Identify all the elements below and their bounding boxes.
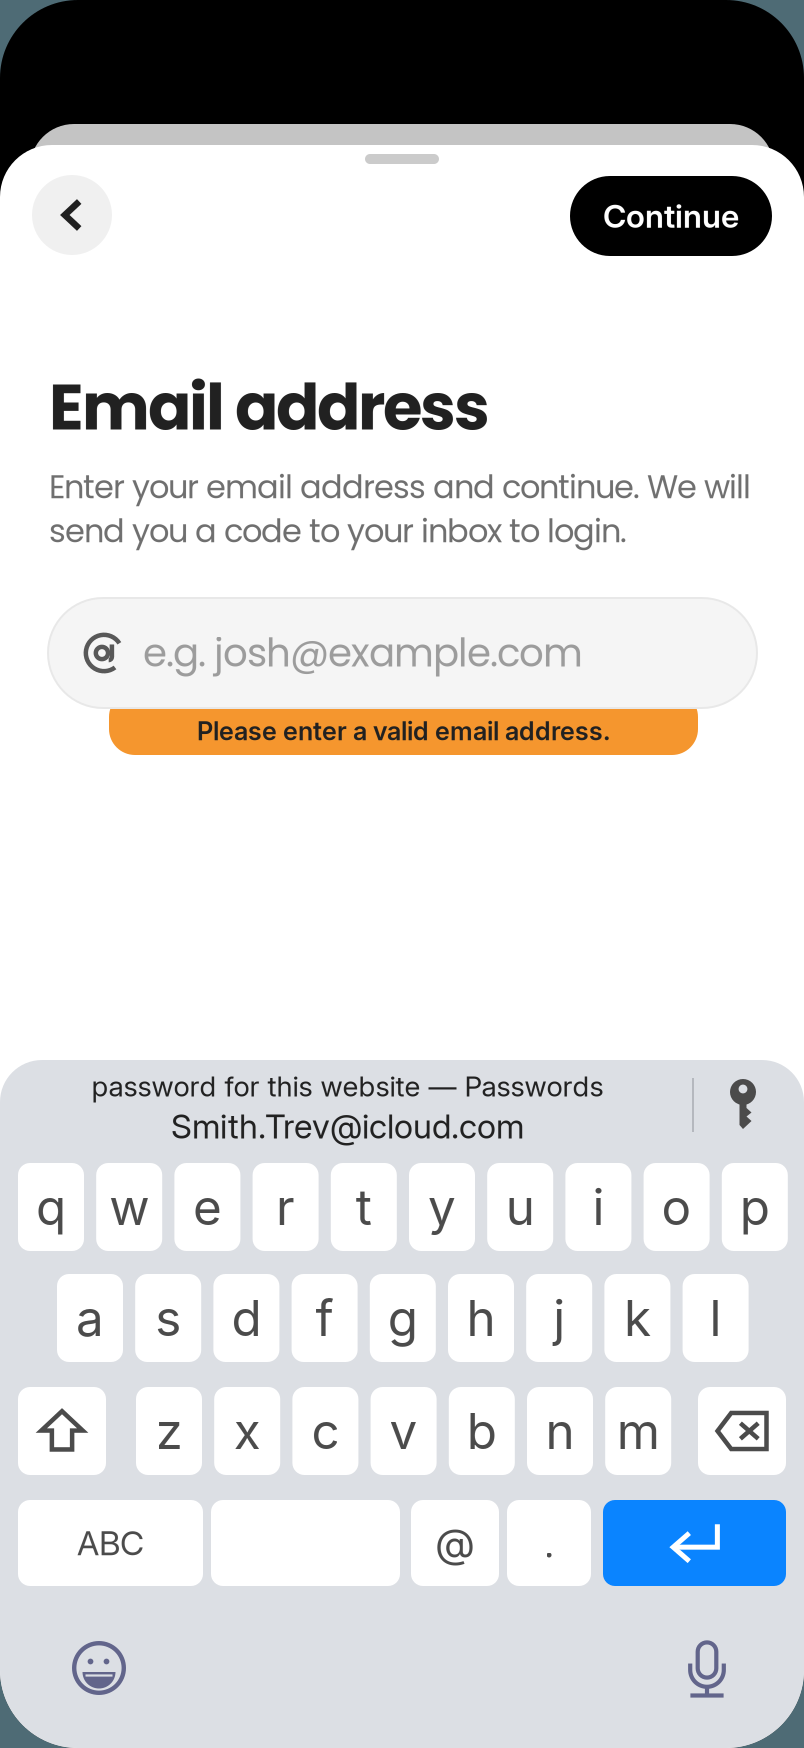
staticText: Smith.Trev@icloud.com	[171, 1106, 524, 1147]
staticText: q	[36, 1177, 66, 1237]
button[interactable]: d	[213, 1274, 279, 1362]
staticText: e	[193, 1177, 222, 1237]
staticText: v	[390, 1401, 418, 1461]
staticText: s	[155, 1288, 181, 1348]
button[interactable]: e	[174, 1163, 240, 1251]
button[interactable]: k	[604, 1274, 670, 1362]
button[interactable]: Shift	[18, 1387, 106, 1475]
button[interactable]: u	[487, 1163, 553, 1251]
staticText: send you a code to your inbox to login.	[49, 509, 627, 553]
staticText: t	[356, 1177, 372, 1237]
button[interactable]: o	[644, 1163, 710, 1251]
button[interactable]: t	[331, 1163, 397, 1251]
button[interactable]: v	[371, 1387, 437, 1475]
button[interactable]: j	[526, 1274, 592, 1362]
button[interactable]: Continue	[570, 176, 772, 256]
staticText: password for this website — Passwords	[91, 1069, 603, 1103]
staticText: f	[316, 1288, 334, 1348]
staticText: u	[506, 1177, 535, 1237]
button[interactable]: .	[507, 1500, 591, 1586]
button[interactable]: Passwords	[730, 1078, 756, 1130]
staticText: x	[234, 1401, 261, 1461]
staticText: j	[553, 1288, 565, 1348]
button[interactable]: h	[448, 1274, 514, 1362]
button[interactable]: b	[449, 1387, 515, 1475]
staticText: d	[231, 1288, 261, 1348]
button[interactable]: q	[18, 1163, 84, 1251]
button[interactable]: password for this website — Passwords	[20, 1068, 675, 1148]
button[interactable]: p	[722, 1163, 788, 1251]
button[interactable]: x	[214, 1387, 280, 1475]
staticText: k	[624, 1288, 651, 1348]
staticText: Continue	[603, 197, 739, 235]
staticText: g	[388, 1288, 418, 1348]
button[interactable]: Return	[603, 1500, 786, 1586]
staticText: Please enter a valid email address.	[197, 716, 610, 746]
staticText: Email address	[49, 362, 490, 452]
button[interactable]: i	[565, 1163, 631, 1251]
staticText: l	[710, 1288, 722, 1348]
staticText: @	[435, 1519, 474, 1567]
button[interactable]: @	[411, 1500, 499, 1586]
staticText: w	[109, 1177, 149, 1237]
button[interactable]: ABC	[18, 1500, 203, 1586]
staticText: p	[740, 1177, 770, 1237]
staticText: r	[276, 1177, 295, 1237]
button[interactable]: m	[605, 1387, 671, 1475]
button[interactable]: y	[409, 1163, 475, 1251]
staticText: b	[467, 1401, 497, 1461]
staticText: o	[662, 1177, 692, 1237]
button[interactable]: l	[683, 1274, 749, 1362]
staticText: .	[544, 1519, 553, 1567]
button[interactable]: n	[527, 1387, 593, 1475]
button[interactable]: w	[96, 1163, 162, 1251]
button[interactable]: Dictation	[688, 1642, 726, 1698]
staticText: m	[617, 1401, 660, 1461]
button[interactable]: Emoji	[72, 1641, 126, 1695]
button[interactable]: r	[253, 1163, 319, 1251]
staticText: i	[592, 1177, 604, 1237]
staticText: h	[466, 1288, 495, 1348]
button[interactable]: z	[136, 1387, 202, 1475]
staticText: y	[428, 1177, 456, 1237]
staticText: n	[545, 1401, 574, 1461]
button[interactable]: f	[292, 1274, 358, 1362]
staticText: c	[311, 1401, 339, 1461]
staticText: a	[76, 1288, 104, 1348]
staticText: z	[155, 1401, 182, 1461]
button[interactable]: g	[370, 1274, 436, 1362]
staticText: ABC	[77, 1523, 144, 1563]
button[interactable]: a	[57, 1274, 123, 1362]
button[interactable]: Delete	[698, 1387, 786, 1475]
button[interactable]: Back	[32, 175, 112, 255]
staticText: e.g. josh@example.com	[143, 626, 583, 680]
staticText: Enter your email address and continue. W…	[49, 465, 751, 509]
button[interactable]: c	[292, 1387, 358, 1475]
button[interactable]: s	[135, 1274, 201, 1362]
